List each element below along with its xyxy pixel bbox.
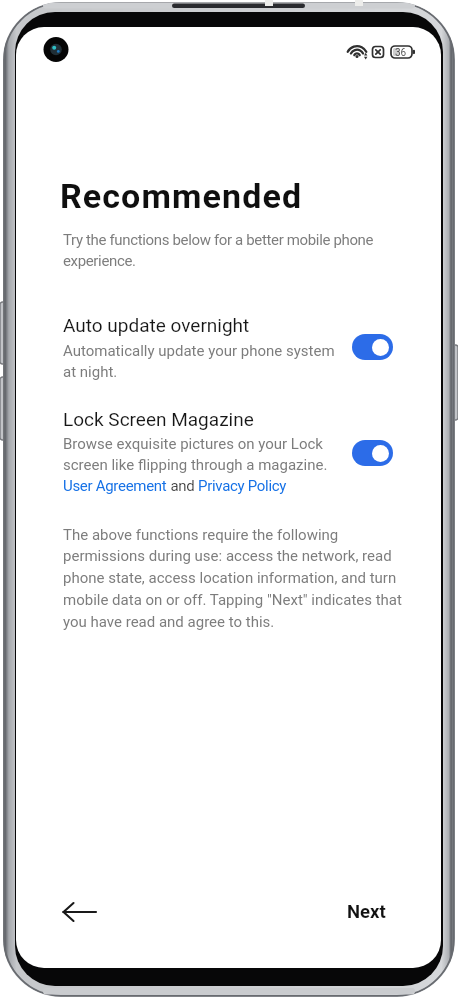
button[interactable] xyxy=(44,885,116,939)
staticText: Auto update overnight xyxy=(63,314,250,336)
staticText: The above functions require the followin… xyxy=(63,526,402,631)
staticText: and xyxy=(167,477,198,495)
button[interactable]: User Agreement xyxy=(63,477,167,495)
staticText: Browse exquisite pictures on your Lock s… xyxy=(63,435,328,474)
button[interactable] xyxy=(352,334,393,360)
staticText: 36 xyxy=(395,47,407,59)
staticText: Next xyxy=(347,901,386,923)
staticText: Automatically update your phone system a… xyxy=(63,342,335,381)
button[interactable]: Next xyxy=(316,885,386,939)
staticText: Recommended xyxy=(60,176,303,216)
button[interactable] xyxy=(56,309,401,387)
button[interactable]: Privacy Policy xyxy=(198,477,287,495)
staticText: Lock Screen Magazine xyxy=(63,408,254,430)
button[interactable] xyxy=(352,440,393,466)
button[interactable] xyxy=(56,405,401,497)
staticText: Try the functions below for a better mob… xyxy=(63,231,374,270)
